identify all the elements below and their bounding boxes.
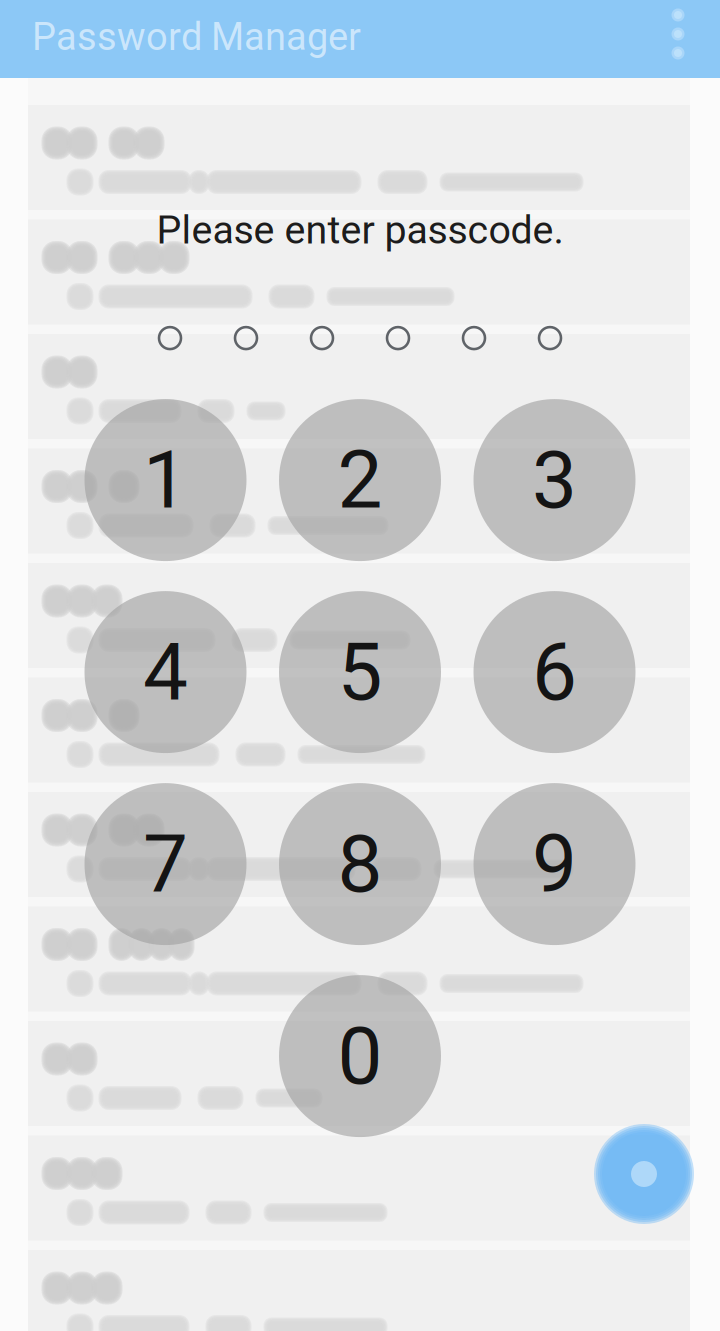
staticText: 7 bbox=[143, 817, 188, 911]
staticText: Password Manager bbox=[32, 15, 361, 59]
staticText: 1 bbox=[143, 433, 188, 527]
staticText: 4 bbox=[143, 625, 188, 719]
staticText: 6 bbox=[532, 625, 577, 719]
button[interactable]: 4 bbox=[84, 591, 246, 753]
button[interactable]: 2 bbox=[279, 399, 441, 561]
staticText: Please enter passcode. bbox=[156, 207, 563, 253]
staticText: 2 bbox=[337, 433, 382, 527]
staticText: 8 bbox=[337, 817, 382, 911]
button[interactable]: 7 bbox=[84, 783, 246, 945]
button[interactable]: 3 bbox=[473, 399, 635, 561]
staticText: 9 bbox=[532, 817, 577, 911]
staticText: 3 bbox=[532, 433, 577, 527]
button[interactable]: 1 bbox=[84, 399, 246, 561]
button[interactable]: 9 bbox=[473, 783, 635, 945]
button[interactable]: 0 bbox=[279, 975, 441, 1137]
button[interactable]: 8 bbox=[279, 783, 441, 945]
button[interactable]: Add password bbox=[594, 1124, 694, 1224]
button[interactable]: More options bbox=[654, 10, 702, 58]
staticText: 0 bbox=[337, 1009, 382, 1103]
button[interactable]: 6 bbox=[473, 591, 635, 753]
button[interactable]: 5 bbox=[279, 591, 441, 753]
staticText: 5 bbox=[337, 625, 382, 719]
